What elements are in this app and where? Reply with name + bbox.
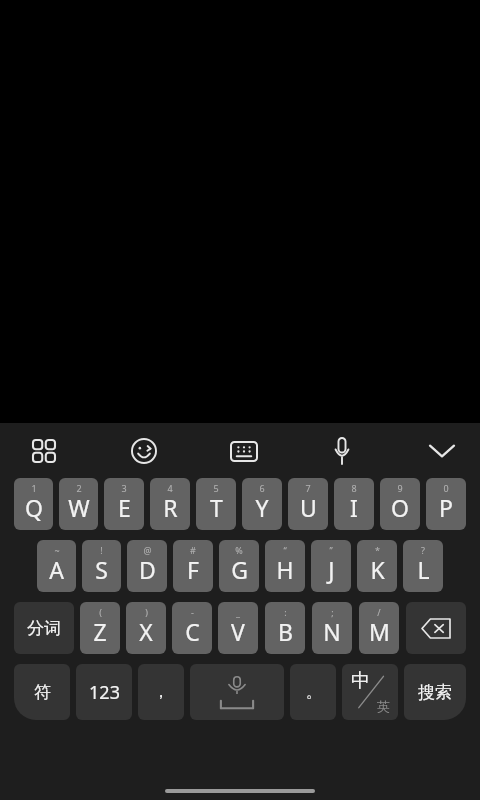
button[interactable]: ( (80, 602, 120, 654)
staticText: K (370, 554, 385, 585)
staticText: G (231, 554, 248, 585)
button[interactable]: 2 (59, 478, 98, 530)
button[interactable]: / (359, 602, 399, 654)
button[interactable]: Menu (24, 431, 64, 471)
button[interactable]: ) (126, 602, 166, 654)
staticText: ~ (54, 544, 60, 556)
button[interactable]: 4 (150, 478, 190, 530)
button[interactable]: % (219, 540, 259, 592)
staticText: N (323, 616, 341, 647)
staticText: ? (421, 544, 425, 556)
button[interactable]: 3 (104, 478, 144, 530)
staticText: F (187, 554, 199, 585)
staticText: 8 (351, 482, 357, 494)
staticText: C (185, 616, 200, 647)
staticText: * (375, 544, 380, 556)
button[interactable]: 搜索 (404, 664, 466, 720)
button[interactable]: : (265, 602, 305, 654)
staticText: X (139, 616, 153, 647)
staticText: @ (143, 544, 152, 556)
staticText: I (350, 492, 358, 523)
staticText: J (328, 554, 335, 585)
button[interactable]: 6 (242, 478, 282, 530)
staticText: L (417, 554, 430, 585)
staticText: Z (93, 616, 107, 647)
staticText: T (210, 492, 223, 523)
button[interactable]: 符 (14, 664, 70, 720)
button[interactable]: Hide keyboard (422, 431, 462, 471)
staticText: 4 (167, 482, 173, 494)
staticText: ， (153, 682, 169, 702)
staticText: “ (283, 544, 287, 556)
staticText: % (235, 544, 243, 556)
button[interactable]: ~ (37, 540, 76, 592)
button[interactable]: Emoji (124, 431, 164, 471)
staticText: / (377, 606, 381, 618)
staticText: 5 (213, 482, 219, 494)
staticText: 2 (76, 482, 82, 494)
button[interactable]: 5 (196, 478, 236, 530)
staticText: 。 (306, 683, 321, 702)
button[interactable]: 9 (380, 478, 420, 530)
staticText: P (439, 492, 453, 523)
staticText: 符 (34, 682, 51, 703)
staticText: # (190, 544, 196, 556)
staticText: - (191, 606, 194, 618)
staticText: B (278, 616, 293, 647)
staticText: O (391, 492, 409, 523)
staticText: ( (99, 606, 102, 618)
button[interactable]: Voice input (322, 431, 362, 471)
button[interactable]: 0 (426, 478, 466, 530)
staticText: V (231, 616, 245, 647)
button[interactable]: _ (218, 602, 258, 654)
staticText: ; (331, 606, 334, 618)
button[interactable]: @ (127, 540, 167, 592)
staticText: W (68, 492, 90, 523)
button[interactable]: 8 (334, 478, 374, 530)
button[interactable]: Backspace (406, 602, 466, 654)
button[interactable]: Space (190, 664, 284, 720)
button[interactable]: 分词 (14, 602, 74, 654)
staticText: 3 (121, 482, 127, 494)
button[interactable]: 。 (290, 664, 336, 720)
button[interactable]: 7 (288, 478, 328, 530)
button[interactable]: # (173, 540, 213, 592)
staticText: M (369, 616, 390, 647)
staticText: 搜索 (418, 682, 452, 703)
button[interactable]: ” (311, 540, 351, 592)
staticText: 9 (397, 482, 403, 494)
staticText: E (118, 492, 131, 523)
button[interactable]: Chinese English toggle (342, 664, 398, 720)
staticText: S (95, 554, 108, 585)
button[interactable]: 1 (14, 478, 53, 530)
button[interactable]: ， (138, 664, 184, 720)
button[interactable]: ! (82, 540, 121, 592)
button[interactable]: 123 (76, 664, 132, 720)
staticText: : (284, 606, 287, 618)
button[interactable]: - (172, 602, 212, 654)
staticText: 0 (443, 482, 449, 494)
staticText: 7 (305, 482, 311, 494)
staticText: Q (25, 492, 43, 523)
staticText: Y (255, 492, 269, 523)
staticText: R (163, 492, 178, 523)
staticText: D (139, 554, 156, 585)
staticText: ! (100, 544, 103, 556)
staticText: 1 (31, 482, 37, 494)
staticText: 123 (89, 680, 120, 705)
button[interactable]: * (357, 540, 397, 592)
staticText: _ (236, 606, 240, 618)
staticText: ” (329, 544, 333, 556)
staticText: 英 (377, 698, 390, 714)
staticText: H (276, 554, 294, 585)
staticText: 中 (351, 669, 370, 693)
button[interactable]: ; (312, 602, 352, 654)
staticText: U (300, 492, 317, 523)
staticText: A (49, 554, 64, 585)
button[interactable]: ? (403, 540, 443, 592)
staticText: 分词 (27, 618, 61, 639)
staticText: ) (145, 606, 148, 618)
button[interactable]: “ (265, 540, 305, 592)
staticText: 6 (259, 482, 265, 494)
button[interactable]: Keyboard layout (224, 431, 264, 471)
